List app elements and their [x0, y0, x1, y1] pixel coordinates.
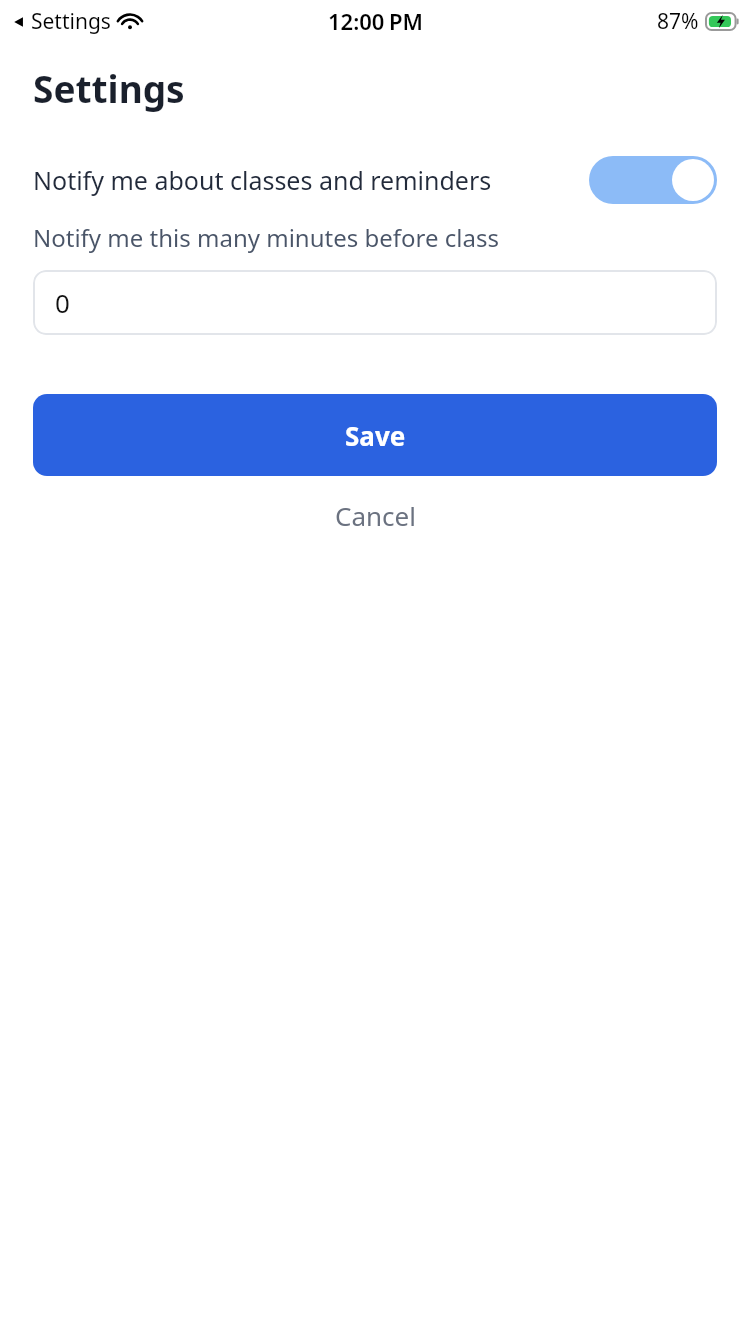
staticText: Cancel — [335, 498, 416, 533]
staticText: 87% — [657, 7, 699, 36]
staticText: Settings — [33, 63, 185, 113]
button[interactable]: Notifications toggle — [589, 156, 717, 204]
button[interactable]: Cancel — [0, 486, 750, 544]
staticText: 12:00 — [328, 6, 385, 36]
staticText: Notify me about classes and reminders — [33, 163, 492, 197]
staticText: PM — [389, 6, 423, 36]
staticText: Save — [345, 418, 406, 453]
button[interactable]: Notify me about classes and reminders — [33, 153, 717, 207]
staticText: 0 — [55, 285, 70, 320]
button[interactable]: Save — [33, 394, 717, 476]
staticText: Settings — [31, 7, 111, 36]
staticText: Notify me this many minutes before class — [33, 221, 499, 254]
button[interactable]: 0 — [33, 270, 717, 335]
